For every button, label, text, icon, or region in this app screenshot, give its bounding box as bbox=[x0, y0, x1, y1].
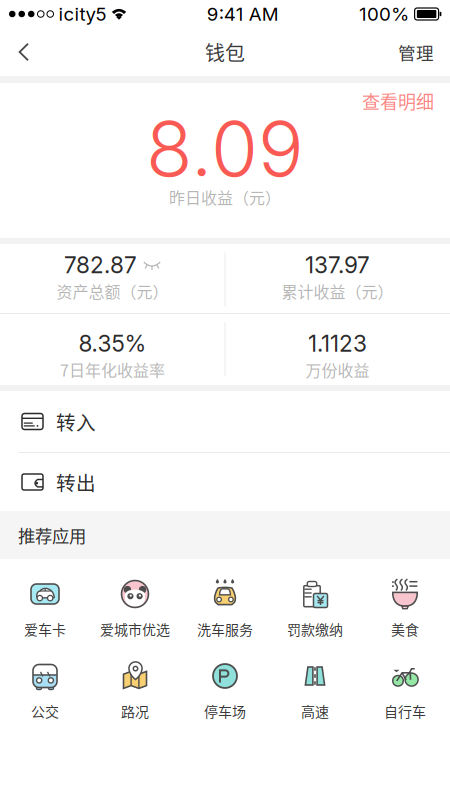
staticText: 8.35% bbox=[78, 330, 146, 357]
staticText: 转入 bbox=[56, 407, 96, 436]
staticText: 昨日收益（元） bbox=[169, 185, 281, 209]
staticText: 资产总额（元） bbox=[56, 279, 168, 303]
staticText: 100% bbox=[359, 3, 409, 25]
button[interactable]: 高速 bbox=[270, 641, 360, 723]
staticText: 路况 bbox=[121, 701, 149, 721]
staticText: 9:41 AM bbox=[207, 3, 279, 25]
button[interactable]: 路况 bbox=[90, 641, 180, 723]
staticText: 爱车卡 bbox=[24, 619, 66, 639]
staticText: 美食 bbox=[391, 619, 419, 639]
button[interactable]: 洗车服务 bbox=[180, 559, 270, 641]
staticText: 1.1123 bbox=[308, 330, 367, 357]
staticText: 7日年化收益率 bbox=[60, 358, 165, 381]
staticText: 转出 bbox=[56, 468, 96, 496]
staticText: 自行车 bbox=[384, 701, 426, 721]
staticText: 推荐应用 bbox=[18, 522, 86, 548]
button[interactable]: 查看明细 bbox=[346, 79, 450, 118]
button[interactable]: 管理 bbox=[380, 27, 450, 77]
button[interactable]: 罚款缴纳 bbox=[270, 559, 360, 641]
staticText: 8.09 bbox=[146, 102, 304, 194]
staticText: 钱包 bbox=[205, 37, 245, 66]
staticText: 罚款缴纳 bbox=[287, 619, 343, 639]
staticText: 爱城市优选 bbox=[100, 619, 170, 639]
button[interactable]: Back bbox=[0, 30, 48, 73]
staticText: 查看明细 bbox=[362, 88, 434, 114]
staticText: 782.87 bbox=[64, 251, 137, 279]
button[interactable]: 公交 bbox=[0, 641, 90, 723]
button[interactable]: 转入 bbox=[0, 391, 450, 452]
button[interactable]: 停车场 bbox=[180, 641, 270, 723]
button[interactable]: 美食 bbox=[360, 559, 450, 641]
button[interactable]: 爱车卡 bbox=[0, 559, 90, 641]
staticText: 137.97 bbox=[305, 251, 370, 279]
staticText: 停车场 bbox=[204, 701, 246, 721]
button[interactable]: 转出 bbox=[0, 453, 450, 511]
staticText: 高速 bbox=[301, 701, 329, 721]
staticText: 洗车服务 bbox=[197, 619, 253, 639]
staticText: 管理 bbox=[398, 39, 434, 65]
button[interactable]: 自行车 bbox=[360, 641, 450, 723]
staticText: 万份收益 bbox=[305, 358, 369, 381]
staticText: icity5 bbox=[58, 3, 106, 25]
staticText: 累计收益（元） bbox=[281, 279, 393, 303]
staticText: 公交 bbox=[31, 701, 59, 721]
button[interactable]: 爱城市优选 bbox=[90, 559, 180, 641]
